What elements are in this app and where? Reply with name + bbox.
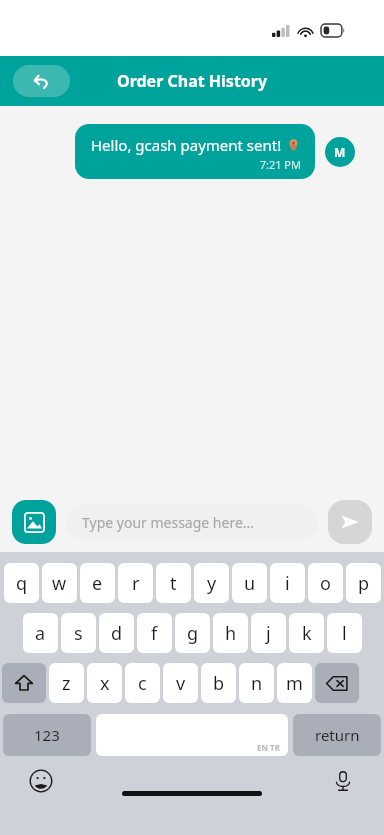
button[interactable]: f [137, 613, 172, 653]
staticText: r [132, 571, 140, 596]
staticText: m [286, 671, 303, 696]
button[interactable]: Backspace [315, 663, 359, 703]
staticText: 123 [34, 725, 60, 745]
staticText: p [358, 571, 370, 596]
button[interactable]: x [87, 663, 122, 703]
button[interactable]: Back [13, 65, 70, 97]
button[interactable]: i [270, 563, 305, 603]
staticText: f [151, 621, 158, 646]
button[interactable]: m [277, 663, 312, 703]
button[interactable]: e [80, 563, 115, 603]
staticText: l [342, 621, 347, 646]
button[interactable]: d [99, 613, 134, 653]
staticText: y [207, 571, 217, 596]
staticText: EN TR [257, 742, 280, 753]
staticText: return [315, 725, 360, 745]
staticText: i [285, 571, 290, 596]
staticText: x [100, 671, 110, 696]
staticText: j [266, 621, 271, 646]
button[interactable]: Shift [2, 663, 46, 703]
button[interactable]: M [325, 137, 355, 167]
button[interactable]: Send [328, 500, 372, 544]
staticText: Hello, gcash payment sent! [91, 135, 282, 155]
button[interactable]: l [327, 613, 362, 653]
staticText: t [170, 571, 177, 596]
staticText: w [52, 571, 67, 596]
staticText: 7:21 PM [91, 157, 301, 172]
button[interactable]: 123 [3, 714, 91, 756]
button[interactable]: Attach image [12, 500, 56, 544]
staticText: e [92, 571, 103, 596]
button[interactable]: t [156, 563, 191, 603]
button[interactable]: j [251, 613, 286, 653]
staticText: s [74, 621, 83, 646]
staticText: M [334, 144, 346, 160]
button[interactable]: u [232, 563, 267, 603]
staticText: Type your message here... [82, 513, 255, 532]
staticText: Order Chat History [117, 70, 268, 92]
button[interactable]: r [118, 563, 153, 603]
button[interactable]: k [289, 613, 324, 653]
button[interactable]: s [61, 613, 96, 653]
button[interactable]: z [49, 663, 84, 703]
staticText: o [320, 571, 331, 596]
button[interactable]: n [239, 663, 274, 703]
button[interactable]: h [213, 613, 248, 653]
button[interactable]: c [125, 663, 160, 703]
staticText: q [16, 571, 28, 596]
staticText: c [138, 671, 147, 696]
staticText: u [244, 571, 256, 596]
staticText: z [62, 671, 71, 696]
staticText: d [111, 621, 123, 646]
button[interactable]: a [23, 613, 58, 653]
button[interactable]: Voice input [330, 768, 356, 794]
button[interactable]: return [293, 714, 381, 756]
button[interactable]: g [175, 613, 210, 653]
staticText: h [225, 621, 237, 646]
staticText: k [302, 621, 312, 646]
staticText: a [35, 621, 46, 646]
staticText: g [187, 621, 199, 646]
button[interactable]: Space [96, 714, 288, 756]
button[interactable]: b [201, 663, 236, 703]
staticText: n [251, 671, 263, 696]
button[interactable]: y [194, 563, 229, 603]
button[interactable]: w [42, 563, 77, 603]
button[interactable]: Hello, gcash payment sent! [75, 124, 315, 179]
button[interactable]: q [4, 563, 39, 603]
button[interactable]: Type your message here... [66, 504, 318, 540]
button[interactable]: Emoji [28, 768, 54, 794]
button[interactable]: v [163, 663, 198, 703]
button[interactable]: p [346, 563, 381, 603]
staticText: v [176, 671, 186, 696]
staticText: b [213, 671, 225, 696]
button[interactable]: o [308, 563, 343, 603]
